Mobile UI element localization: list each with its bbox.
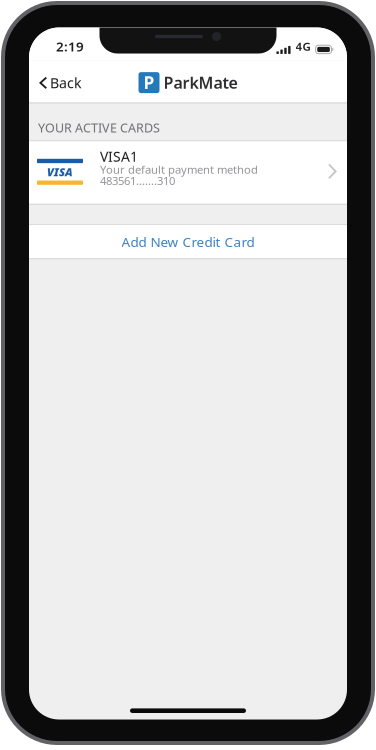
staticText: VISA1 xyxy=(100,147,138,166)
staticText: 2:19 xyxy=(56,37,84,55)
staticText: YOUR ACTIVE CARDS xyxy=(38,119,160,136)
button[interactable]: VISA xyxy=(29,141,347,204)
button[interactable]: Back xyxy=(29,60,90,102)
staticText: Your default payment method xyxy=(100,162,258,177)
staticText: 4G xyxy=(295,39,310,54)
button[interactable]: Add New Credit Card xyxy=(29,225,347,258)
staticText: Add New Credit Card xyxy=(121,233,254,251)
staticText: ParkMate xyxy=(163,72,237,93)
staticText: P xyxy=(143,71,154,94)
staticText: Back xyxy=(50,73,82,92)
staticText: VISA xyxy=(47,164,73,179)
staticText: 483561.......310 xyxy=(100,173,175,188)
